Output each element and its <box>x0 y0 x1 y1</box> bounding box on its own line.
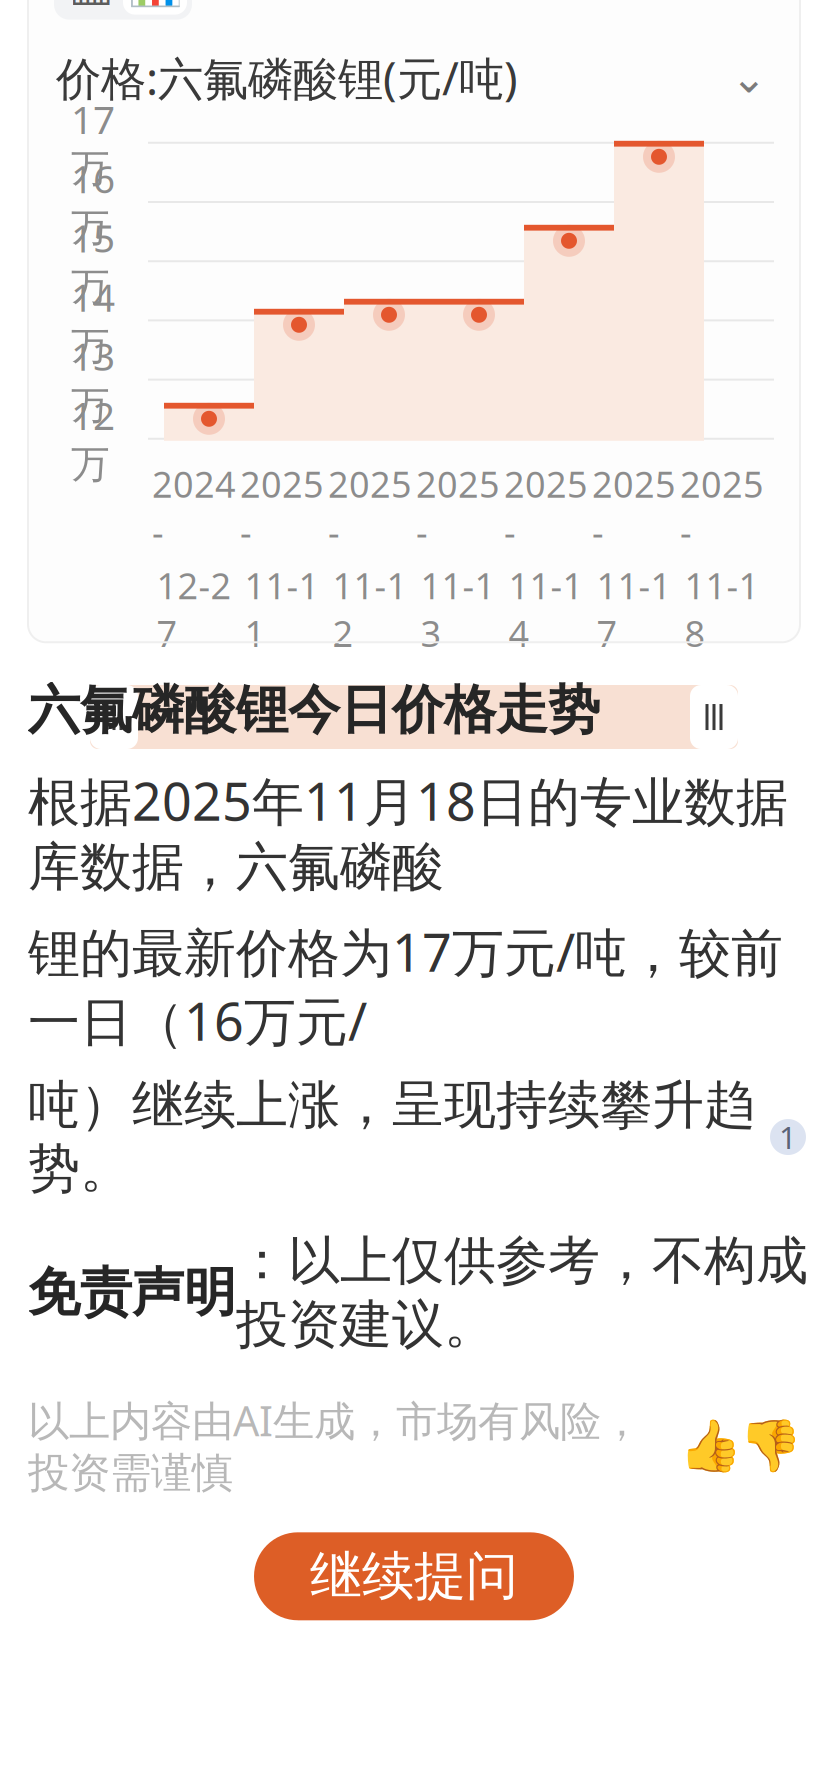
button[interactable]: 调整时间范围 <box>690 685 738 749</box>
staticText: 👎 <box>738 1416 801 1474</box>
staticText: 2025- <box>328 460 412 555</box>
staticText: 2024- <box>152 460 236 555</box>
staticText: 16万 <box>71 153 115 251</box>
staticText: 15万 <box>71 212 115 311</box>
staticText: 继续提问 <box>310 1544 518 1608</box>
staticText: 11-17 <box>596 561 671 657</box>
staticText: ：以上仅供参考，不构成投资建议。 <box>236 1229 808 1357</box>
staticText: 2025- <box>680 460 764 555</box>
button[interactable]: 切换指标 <box>726 57 772 99</box>
staticText: 11-14 <box>508 561 583 657</box>
staticText: 2025- <box>240 460 324 555</box>
button[interactable]: 继续提问 <box>254 1532 574 1620</box>
staticText: 六氟磷酸锂今日价格走势 <box>28 678 600 742</box>
staticText: 12万 <box>71 389 115 488</box>
button[interactable]: 引用来源 1 <box>770 1117 806 1157</box>
staticText: 以上内容由AI生成，市场有风险，投资需谨慎 <box>28 1393 642 1498</box>
staticText: ⌄ <box>731 53 767 102</box>
staticText: 2025- <box>592 460 676 555</box>
staticText: 锂的最新价格为17万元/吨，较前一日（16万元/ <box>28 917 783 1055</box>
staticText: 吨）继续上涨，呈现持续攀升趋势。 <box>28 1073 756 1201</box>
staticText: 11-11 <box>244 561 319 657</box>
button[interactable]: 赞 <box>680 1415 740 1475</box>
staticText: ▦ <box>68 0 113 10</box>
staticText: 免责声明 <box>28 1261 236 1325</box>
staticText: 1 <box>779 1117 797 1157</box>
staticText: 👍 <box>678 1416 741 1474</box>
staticText: 12-27 <box>156 561 231 657</box>
staticText: 14万 <box>71 271 115 370</box>
staticText: 2025- <box>416 460 500 555</box>
button[interactable]: 图表视图 <box>123 0 187 15</box>
staticText: 2025- <box>504 460 588 555</box>
staticText: 11-18 <box>684 561 759 657</box>
staticText: 📊 <box>127 0 182 8</box>
staticText: 价格:六氟磷酸锂(元/吨) <box>56 48 518 108</box>
staticText: 17万 <box>71 93 115 192</box>
staticText: 11-13 <box>420 561 495 657</box>
button[interactable]: 调整时间范围 <box>90 685 138 749</box>
staticText: 根据2025年11月18日的专业数据库数据，六氟磷酸 <box>28 766 788 899</box>
button[interactable]: 表格视图 <box>59 0 123 15</box>
staticText: 11-12 <box>332 561 407 657</box>
button[interactable]: 踩 <box>740 1415 800 1475</box>
staticText: 13万 <box>71 330 115 429</box>
